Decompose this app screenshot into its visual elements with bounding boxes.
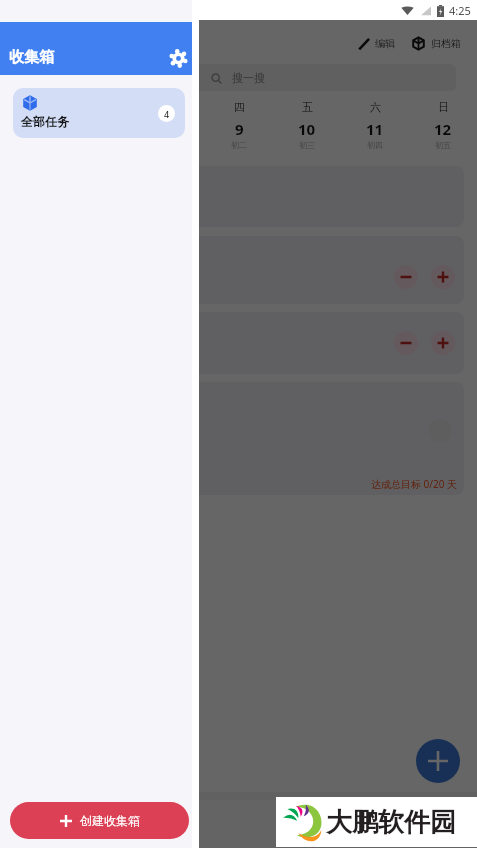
button[interactable]: 日	[409, 100, 477, 150]
button[interactable]: Add	[416, 739, 460, 783]
button[interactable]: 达成总目标 0/20 天	[13, 382, 464, 495]
button[interactable]: Decrease	[13, 312, 464, 374]
staticText: 11	[366, 119, 384, 139]
button[interactable]	[13, 166, 464, 227]
staticText: 创建收集箱	[80, 813, 140, 828]
staticText: 12	[434, 119, 452, 139]
button[interactable]: Decrease	[394, 331, 418, 355]
staticText: 全部任务	[21, 114, 69, 129]
button[interactable]: Increase	[431, 331, 455, 355]
staticText: 编辑	[375, 37, 395, 50]
button[interactable]: Settings	[165, 45, 191, 71]
staticText: 4	[164, 108, 170, 120]
button[interactable]: Decrease	[13, 236, 464, 304]
staticText: 10	[298, 119, 316, 139]
button[interactable]: Increase	[431, 265, 455, 289]
button[interactable]: 四	[205, 100, 273, 150]
button[interactable]: 五	[273, 100, 341, 150]
staticText: 初五	[435, 140, 451, 150]
button[interactable]: 一	[0, 100, 69, 150]
staticText: 大鹏软件园	[326, 806, 456, 839]
staticText: 9	[235, 119, 244, 139]
button[interactable]: Decrease	[394, 265, 418, 289]
staticText: 初二	[231, 140, 247, 150]
staticText: 归档箱	[431, 37, 461, 50]
button[interactable]: 搜一搜	[12, 64, 456, 91]
staticText: 初三	[299, 140, 315, 150]
staticText: 三	[166, 100, 177, 114]
button[interactable]: 全部任务	[13, 88, 185, 138]
staticText: 五	[302, 100, 313, 114]
staticText: 7	[99, 119, 108, 139]
staticText: 收集箱	[9, 48, 54, 67]
button[interactable]: 六	[341, 100, 409, 150]
button[interactable]: 编辑	[356, 33, 397, 54]
staticText: 四	[234, 100, 245, 114]
staticText: 六	[370, 100, 381, 114]
staticText: 8	[167, 119, 176, 139]
staticText: 达成总目标 0/20 天	[371, 477, 458, 491]
button[interactable]: 归档箱	[410, 33, 463, 54]
button[interactable]: 三	[137, 100, 205, 150]
button[interactable]: 二	[69, 100, 137, 150]
staticText: 4:25	[449, 3, 471, 18]
staticText: 一	[29, 100, 40, 114]
button[interactable]: 创建收集箱	[10, 802, 189, 839]
staticText: 搜一搜	[232, 71, 265, 85]
staticText: 初四	[367, 140, 383, 150]
staticText: 日	[438, 100, 449, 114]
staticText: 6	[30, 119, 39, 139]
